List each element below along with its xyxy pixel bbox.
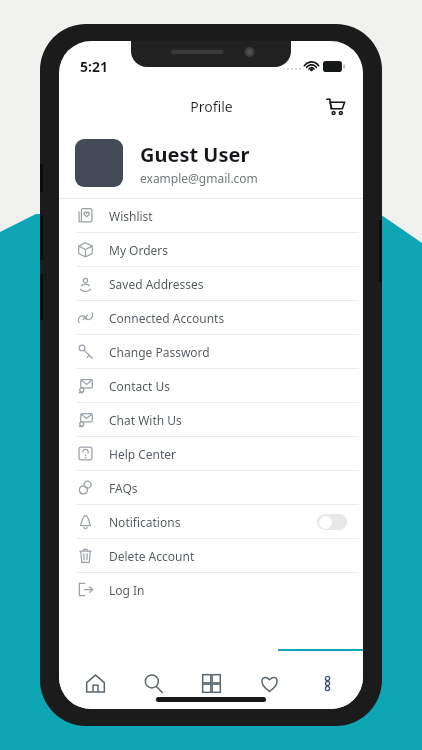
button[interactable]: Change Password (59, 335, 363, 368)
button[interactable]: Help Center (59, 437, 363, 470)
staticText: FAQs (109, 480, 138, 496)
button[interactable]: Log In (59, 573, 363, 606)
staticText: Connected Accounts (109, 310, 225, 326)
button[interactable]: Wishlist (59, 199, 363, 232)
button[interactable]: Categories (189, 661, 233, 705)
button[interactable]: Home (73, 661, 117, 705)
button[interactable]: FAQs (59, 471, 363, 504)
button[interactable]: Delete Account (59, 539, 363, 572)
staticText: Wishlist (109, 208, 153, 224)
staticText: Profile (190, 97, 233, 116)
staticText: My Orders (109, 242, 169, 258)
button[interactable]: More (305, 661, 349, 705)
button[interactable]: Guest User (59, 128, 363, 198)
staticText: Saved Addresses (109, 276, 204, 292)
staticText: Log In (109, 582, 145, 598)
staticText: 5:21 (80, 57, 108, 76)
button[interactable]: Chat With Us (59, 403, 363, 436)
staticText: Chat With Us (109, 412, 182, 428)
button[interactable]: Favorites (247, 661, 291, 705)
button[interactable]: Search (131, 661, 175, 705)
staticText: example@gmail.com (140, 170, 258, 186)
button[interactable]: Saved Addresses (59, 267, 363, 300)
button[interactable]: Notifications (59, 505, 363, 538)
button[interactable]: My Orders (59, 233, 363, 266)
button[interactable]: Notifications toggle (317, 514, 347, 530)
button[interactable]: Contact Us (59, 369, 363, 402)
staticText: Notifications (109, 514, 181, 530)
staticText: Contact Us (109, 378, 171, 394)
staticText: Change Password (109, 344, 210, 360)
staticText: Help Center (109, 446, 177, 462)
staticText: Delete Account (109, 548, 195, 564)
button[interactable]: Cart (319, 90, 351, 122)
button[interactable]: Connected Accounts (59, 301, 363, 334)
staticText: Guest User (140, 141, 250, 168)
